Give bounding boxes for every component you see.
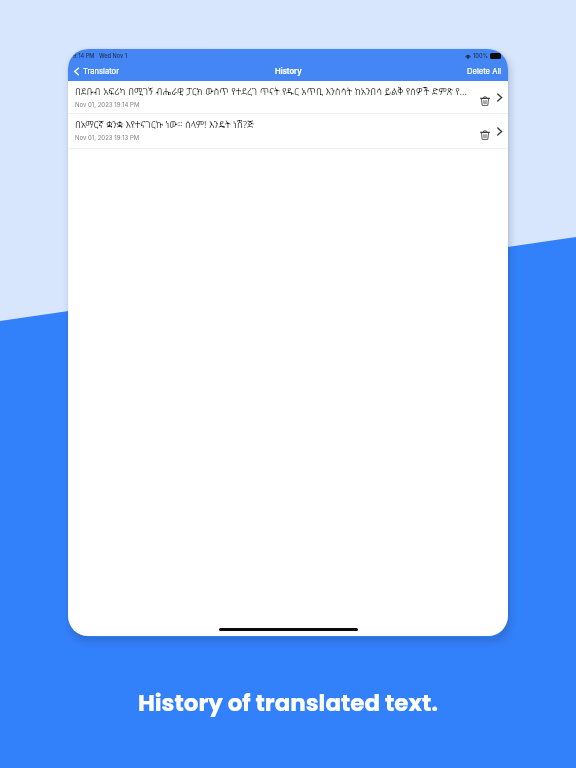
button[interactable]: Back (73, 67, 121, 76)
button[interactable]: በደቡብ አፍሪካ በሚገኝ ብሔራዊ ፓርክ ውስጥ የተደረገ ጥናት የዱ… (68, 81, 508, 114)
button[interactable]: Delete (478, 128, 492, 142)
other: Open (497, 93, 502, 102)
staticText: Wed Nov 1 (99, 53, 128, 60)
staticText: Nov 01, 2023 19:13 PM (75, 134, 140, 141)
staticText: በደቡብ አፍሪካ በሚገኝ ብሔራዊ ፓርክ ውስጥ የተደረገ ጥናት የዱ… (75, 85, 470, 98)
staticText: Nov 01, 2023 19:14 PM (75, 101, 140, 108)
other: Back (74, 67, 79, 76)
staticText: History of translated text. (138, 687, 438, 719)
staticText: Translator (83, 67, 120, 76)
button[interactable]: Delete (478, 94, 492, 108)
button[interactable]: Delete All (466, 67, 503, 76)
other: Open (497, 127, 502, 136)
staticText: በአማርኛ ቋንቋ እየተናገርኩ ነው። ሰላም! እንዴት ነሽ?ጅ (75, 118, 254, 131)
staticText: 100% (473, 53, 489, 60)
button[interactable]: በአማርኛ ቋንቋ እየተናገርኩ ነው። ሰላም! እንዴት ነሽ?ጅ (68, 114, 508, 149)
staticText: History (275, 67, 302, 76)
staticText: 9:14 PM (73, 53, 95, 60)
